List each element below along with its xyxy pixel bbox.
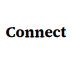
staticText: Connect [5, 22, 66, 42]
